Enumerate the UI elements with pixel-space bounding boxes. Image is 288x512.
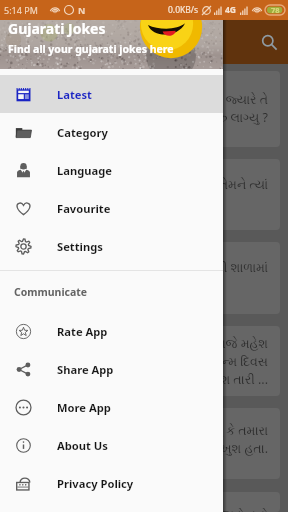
staticText: એક છોકરો તેની બાજુમાં બેઠો હતો જ્યારે તે… [18,91,268,126]
button[interactable]: More App [0,388,223,426]
staticText: Category [57,125,108,140]
staticText: એક વાર એક છોકરો સાઈકલ લઈ ને જતો હતો [18,506,268,512]
staticText: About Us [57,438,108,453]
staticText: Latest [57,87,92,102]
staticText: 78 [271,5,280,15]
staticText: Language [57,163,113,178]
button[interactable]: Favourite [0,189,223,227]
staticText: છોકરી એ છોકરાને કીધુ કે આજે મહેશ છુ કારણ… [18,335,268,388]
staticText: એક દિવસ સવારના સમયે એક ગામની શાળામાં [18,259,268,276]
staticText: Gujarati Jokes [8,20,106,38]
button[interactable]: Search [254,27,284,57]
staticText: 5:14 PM [4,4,38,16]
staticText: 0.0KB/s [168,4,199,16]
staticText: Favourite [57,201,111,216]
staticText: Privacy Policy [57,476,134,491]
button[interactable]: Category [0,113,223,151]
button[interactable]: એક વાર એક છોકરો સાઈકલ લઈ ને જતો હતો [8,492,280,512]
button[interactable]: About Us [0,426,223,464]
button[interactable]: એક દિવસ સવારના સમયે એક ગામની શાળામાં [8,242,280,314]
button[interactable]: Language [0,151,223,189]
button[interactable]: Share App [0,350,223,388]
button[interactable]: એક ભાઈ એ બીજા ભાઈ ને કીધુ કે તમારા ઘરે બ… [8,408,280,479]
button[interactable]: Settings [0,227,223,265]
button[interactable]: Rate App [0,312,223,350]
staticText: Communicate [14,285,88,299]
button[interactable]: Latest [0,75,223,113]
button[interactable]: છોકરી એ છોકરાને કીધુ કે આજે મહેશ છુ કારણ… [8,326,280,396]
staticText: More App [57,400,111,415]
staticText: Settings [57,239,103,254]
staticText: Find all your gujarati jokes here [8,42,174,56]
button[interactable]: બે મિત્રો વાત કરતા હતા ત્યારે તેમને ત્યા… [8,159,280,230]
staticText: Rate App [57,324,108,339]
staticText: 4G [225,4,237,16]
staticText: એક ભાઈ એ બીજા ભાઈ ને કીધુ કે તમારા ઘરે બ… [18,422,268,457]
button[interactable]: એક છોકરો તેની બાજુમાં બેઠો હતો જ્યારે તે… [8,71,280,147]
staticText: બે મિત્રો વાત કરતા હતા ત્યારે તેમને ત્યા… [18,176,268,193]
button[interactable]: Privacy Policy [0,464,223,502]
staticText: Share App [57,362,114,377]
staticText: N [78,4,86,16]
